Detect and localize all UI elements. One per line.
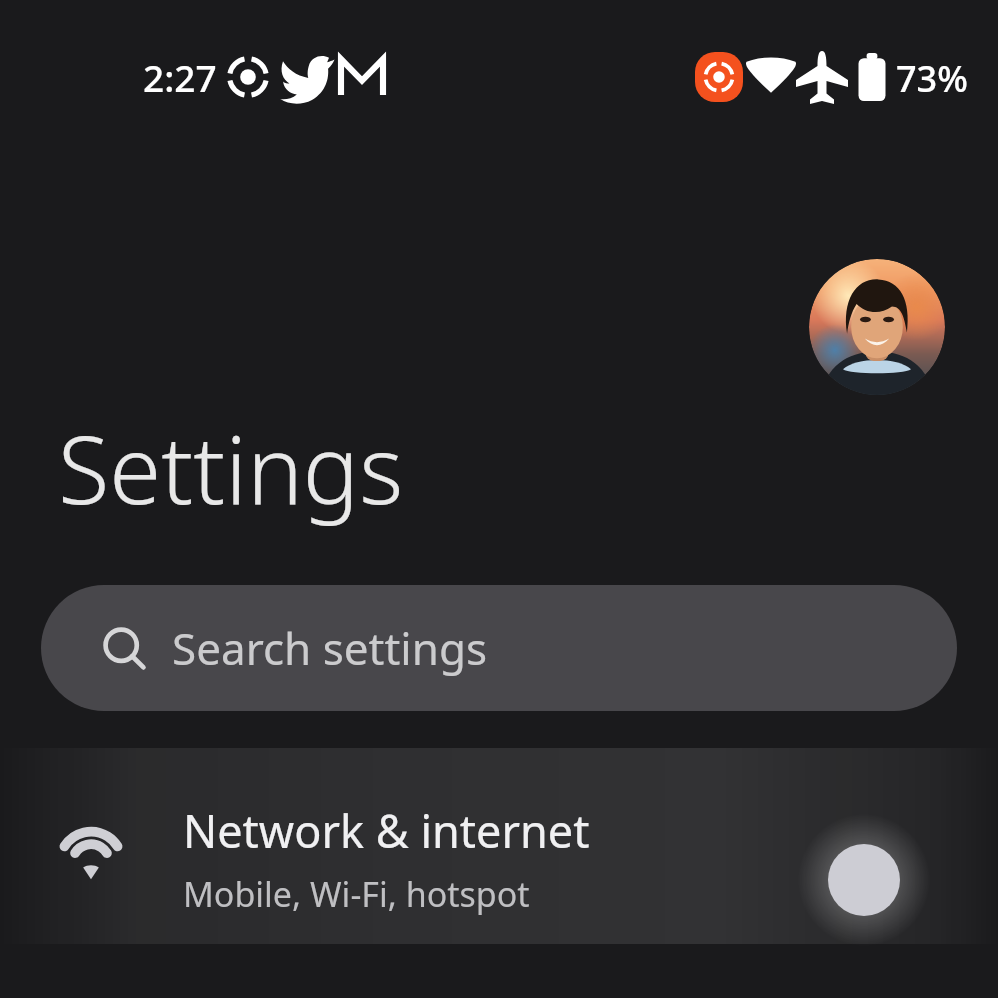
- button[interactable]: Account profile: [809, 259, 945, 395]
- button[interactable]: Search settings: [41, 585, 957, 711]
- staticText: Mobile, Wi-Fi, hotspot: [183, 871, 530, 917]
- staticText: Settings: [58, 404, 404, 532]
- staticText: Network & internet: [183, 800, 590, 861]
- staticText: 73%: [896, 54, 968, 103]
- button[interactable]: Network & internet: [0, 748, 998, 944]
- staticText: 2:27: [143, 52, 217, 102]
- staticText: Search settings: [172, 618, 488, 678]
